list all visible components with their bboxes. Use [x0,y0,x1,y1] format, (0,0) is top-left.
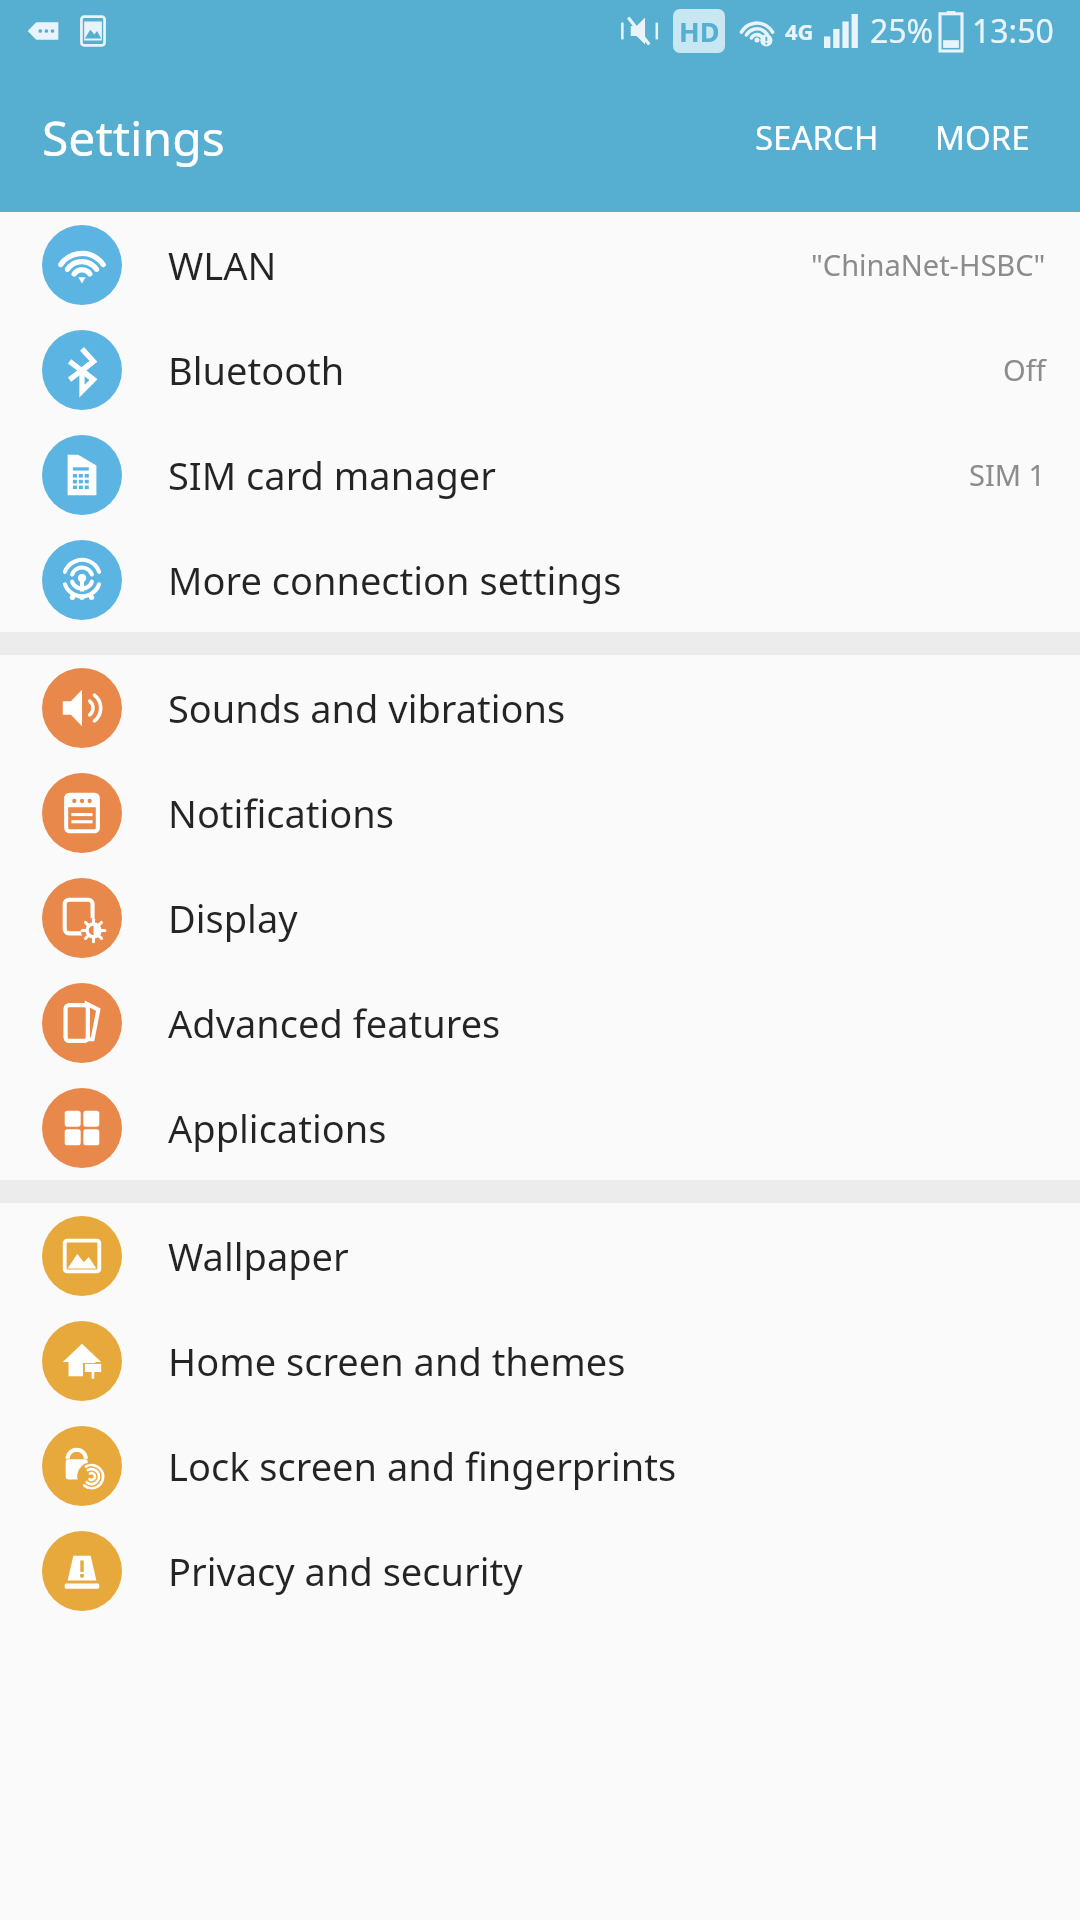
button[interactable]: Bluetooth [0,317,1080,422]
button[interactable]: Advanced features [0,970,1080,1075]
staticText: Settings [42,105,225,170]
staticText: Display [168,892,298,944]
staticText: MORE [935,115,1030,160]
button[interactable]: Applications [0,1075,1080,1180]
staticText: Privacy and security [168,1545,523,1597]
staticText: "ChinaNet-HSBC" [811,245,1046,284]
staticText: 25% [870,9,934,53]
staticText: SIM 1 [969,455,1046,494]
staticText: 4G [785,16,814,46]
staticText: Wallpaper [168,1230,349,1282]
staticText: Lock screen and fingerprints [168,1440,677,1492]
staticText: Applications [168,1102,387,1154]
staticText: Home screen and themes [168,1335,626,1387]
button[interactable]: Sounds and vibrations [0,655,1080,760]
button[interactable]: Wallpaper [0,1203,1080,1308]
button[interactable]: Display [0,865,1080,970]
staticText: Advanced features [168,997,501,1049]
button[interactable]: SEARCH [745,99,889,176]
button[interactable]: Home screen and themes [0,1308,1080,1413]
staticText: Bluetooth [168,344,345,396]
staticText: Off [1003,350,1046,389]
staticText: More connection settings [168,554,622,606]
staticText: WLAN [168,239,277,291]
staticText: SEARCH [755,115,879,160]
staticText: 13:50 [972,9,1054,53]
staticText: Sounds and vibrations [168,682,566,734]
button[interactable]: MORE [925,99,1040,176]
button[interactable]: Privacy and security [0,1518,1080,1623]
button[interactable]: More connection settings [0,527,1080,632]
staticText: SIM card manager [168,449,496,501]
staticText: Notifications [168,787,395,839]
button[interactable]: WLAN [0,212,1080,317]
button[interactable]: Notifications [0,760,1080,865]
staticText: HD [679,13,720,50]
button[interactable]: SIM card manager [0,422,1080,527]
button[interactable]: Lock screen and fingerprints [0,1413,1080,1518]
